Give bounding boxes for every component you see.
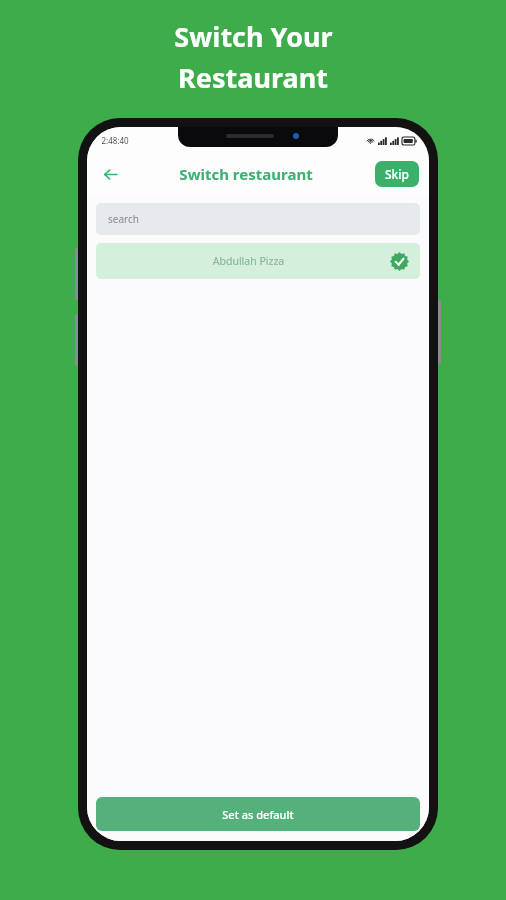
staticText: Restaurant [178, 59, 328, 96]
button[interactable]: search [96, 203, 420, 235]
staticText: Abdullah Pizza [107, 254, 390, 268]
staticText: 2:48:40 [101, 135, 129, 146]
staticText: Skip [385, 166, 409, 182]
staticText: search [108, 212, 139, 226]
staticText: Set as default [222, 807, 294, 822]
staticText: Switch restaurant [179, 164, 313, 184]
staticText: Switch Your [174, 18, 333, 55]
button[interactable]: Abdullah Pizza [96, 243, 420, 279]
button[interactable]: Set as default [96, 797, 420, 831]
button[interactable]: Skip [375, 161, 419, 187]
button[interactable]: Back [93, 157, 127, 191]
